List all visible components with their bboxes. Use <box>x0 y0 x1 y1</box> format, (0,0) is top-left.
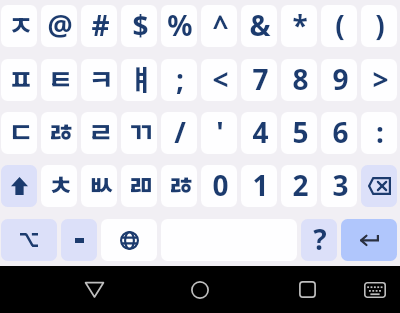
button[interactable]: 9 <box>321 59 357 101</box>
staticText: ; <box>176 60 184 98</box>
button[interactable]: $ <box>121 5 157 47</box>
staticText: @ <box>47 6 73 44</box>
button[interactable]: ㅄ <box>81 165 117 207</box>
staticText: ) <box>375 6 385 44</box>
button[interactable]: % <box>161 5 197 47</box>
staticText: 9 <box>332 60 349 98</box>
button[interactable]: ㄷ <box>1 112 37 154</box>
button[interactable]: ㅊ <box>41 165 77 207</box>
button[interactable]: 1 <box>241 165 277 207</box>
button[interactable]: ㅍ <box>1 59 37 101</box>
button[interactable]: & <box>241 5 277 47</box>
button[interactable]: @ <box>41 5 77 47</box>
button[interactable]: Recent apps <box>279 266 335 313</box>
staticText: < <box>212 60 229 98</box>
button[interactable]: ㅋ <box>81 59 117 101</box>
staticText: ㅈ <box>8 5 34 45</box>
staticText: 4 <box>252 113 269 151</box>
staticText: 8 <box>292 60 309 98</box>
staticText: : <box>376 113 384 151</box>
staticText: 2 <box>292 166 309 204</box>
button[interactable]: ( <box>321 5 357 47</box>
button[interactable]: < <box>201 59 237 101</box>
button[interactable] <box>361 165 397 207</box>
staticText: ㄲ <box>128 112 154 152</box>
button[interactable]: 2 <box>281 165 317 207</box>
button[interactable]: Switch keyboard <box>347 266 400 313</box>
button[interactable]: ㄹ <box>81 112 117 154</box>
staticText: ? <box>313 220 327 258</box>
button[interactable]: 4 <box>241 112 277 154</box>
button[interactable]: 0 <box>201 165 237 207</box>
button[interactable]: ^ <box>201 5 237 47</box>
button[interactable] <box>101 219 157 261</box>
button[interactable] <box>61 219 97 261</box>
button[interactable]: ㅀ <box>41 112 77 154</box>
button[interactable]: 8 <box>281 59 317 101</box>
button[interactable]: 6 <box>321 112 357 154</box>
staticText: ㄻ <box>128 165 154 205</box>
staticText: 1 <box>252 166 269 204</box>
staticText: 3 <box>332 166 349 204</box>
staticText: 7 <box>252 60 269 98</box>
staticText: $ <box>132 6 149 44</box>
button[interactable] <box>1 165 37 207</box>
staticText: ㄹ <box>88 112 114 152</box>
button[interactable]: : <box>361 112 397 154</box>
staticText: ㅒ <box>128 59 154 99</box>
button[interactable]: ? <box>301 219 337 261</box>
staticText: * <box>292 6 308 44</box>
button[interactable]: ㅌ <box>41 59 77 101</box>
button[interactable]: Back <box>66 266 122 313</box>
button[interactable]: ) <box>361 5 397 47</box>
staticText: ㅊ <box>48 165 74 205</box>
button[interactable]: ㅀ <box>161 165 197 207</box>
staticText: ㅀ <box>48 112 74 152</box>
staticText: ㅍ <box>8 59 34 99</box>
button[interactable]: Home <box>172 266 228 313</box>
button[interactable]: 3 <box>321 165 357 207</box>
button[interactable]: # <box>81 5 117 47</box>
button[interactable]: / <box>161 112 197 154</box>
button[interactable] <box>341 219 397 261</box>
button[interactable]: ㅒ <box>121 59 157 101</box>
staticText: 6 <box>332 113 349 151</box>
button[interactable]: ㅈ <box>1 5 37 47</box>
button[interactable] <box>1 219 57 261</box>
staticText: ㅌ <box>48 59 74 99</box>
button[interactable]: ㄻ <box>121 165 157 207</box>
button[interactable]: ㄲ <box>121 112 157 154</box>
staticText: > <box>372 60 389 98</box>
staticText: ( <box>335 6 345 44</box>
staticText: / <box>174 113 186 151</box>
button[interactable]: ' <box>201 112 237 154</box>
staticText: 0 <box>212 166 229 204</box>
staticText: ㄷ <box>8 112 34 152</box>
staticText: % <box>167 6 193 44</box>
button[interactable]: ; <box>161 59 197 101</box>
staticText: ㅄ <box>88 165 114 205</box>
button[interactable]: 7 <box>241 59 277 101</box>
staticText: ㅋ <box>88 59 114 99</box>
staticText: ' <box>216 113 224 151</box>
staticText: # <box>91 6 110 44</box>
button[interactable]: * <box>281 5 317 47</box>
staticText: ^ <box>212 6 229 44</box>
staticText: & <box>249 6 271 44</box>
staticText: ㅀ <box>168 165 194 205</box>
button[interactable]: > <box>361 59 397 101</box>
staticText: 5 <box>292 113 309 151</box>
button[interactable]: 5 <box>281 112 317 154</box>
